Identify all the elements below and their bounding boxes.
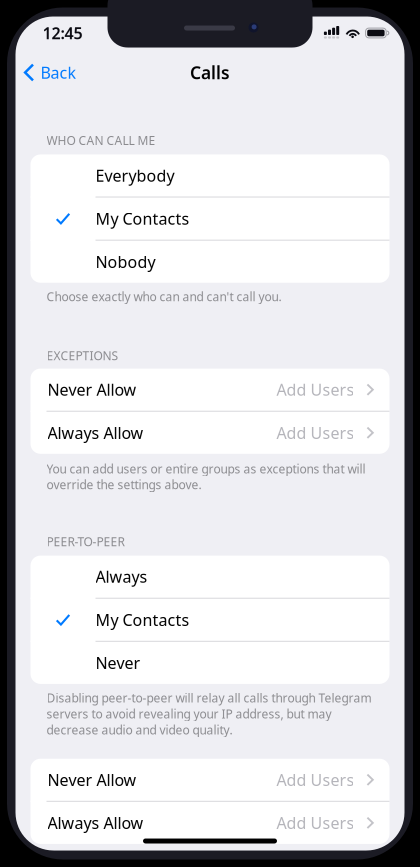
staticText: Choose exactly who can and can't call yo…: [46, 289, 281, 305]
button[interactable]: Always Allow: [30, 412, 389, 454]
button[interactable]: Never Allow: [30, 759, 389, 801]
staticText: My Contacts: [95, 208, 189, 229]
staticText: Disabling peer-to-peer will relay all ca…: [46, 690, 371, 738]
staticText: Calls: [190, 61, 230, 84]
button[interactable]: Always Allow: [30, 802, 389, 844]
button[interactable]: Nobody: [30, 241, 389, 283]
staticText: Nobody: [95, 251, 155, 272]
staticText: WHO CAN CALL ME: [46, 132, 155, 148]
button[interactable]: Always: [30, 556, 389, 598]
staticText: You can add users or entire groups as ex…: [46, 461, 365, 493]
staticText: Never: [95, 652, 140, 673]
staticText: Add Users: [276, 422, 354, 443]
staticText: Always Allow: [47, 812, 143, 833]
staticText: Never Allow: [47, 769, 136, 790]
button[interactable]: My Contacts: [30, 599, 389, 641]
staticText: Add Users: [276, 379, 354, 400]
button[interactable]: Never Allow: [30, 369, 389, 411]
staticText: PEER-TO-PEER: [46, 534, 124, 550]
staticText: Add Users: [276, 769, 354, 790]
staticText: Always: [95, 566, 147, 587]
staticText: Always Allow: [47, 422, 143, 443]
staticText: Everybody: [95, 165, 174, 186]
button[interactable]: Never: [30, 642, 389, 684]
staticText: 12:45: [42, 22, 82, 44]
staticText: Back: [40, 62, 76, 83]
staticText: Never Allow: [47, 379, 136, 400]
button[interactable]: My Contacts: [30, 197, 389, 240]
staticText: Add Users: [276, 812, 354, 833]
button[interactable]: Back: [15, 55, 76, 90]
staticText: My Contacts: [95, 609, 189, 630]
staticText: EXCEPTIONS: [46, 348, 118, 364]
button[interactable]: Everybody: [30, 154, 389, 196]
